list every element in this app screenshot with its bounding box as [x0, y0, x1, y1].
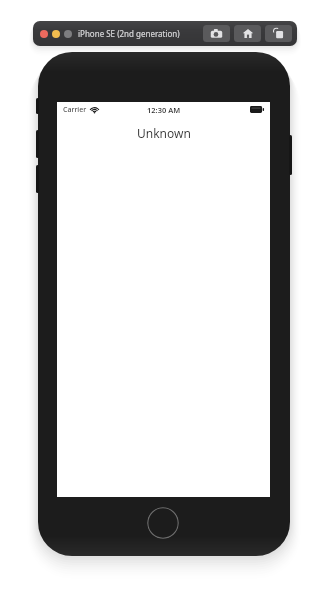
- button[interactable]: Home: [147, 507, 179, 539]
- button[interactable]: Zoom: [64, 30, 72, 38]
- staticText: Unknown: [137, 125, 191, 141]
- button[interactable]: Rotate: [265, 25, 292, 42]
- button[interactable]: Minimize: [52, 30, 60, 38]
- staticText: Carrier: [63, 105, 87, 115]
- button[interactable]: Screenshot: [203, 25, 230, 42]
- staticText: 12:30 AM: [147, 105, 181, 115]
- button[interactable]: Home: [234, 25, 261, 42]
- staticText: iPhone SE (2nd generation) (13…: [78, 28, 193, 39]
- button[interactable]: Close: [40, 30, 48, 38]
